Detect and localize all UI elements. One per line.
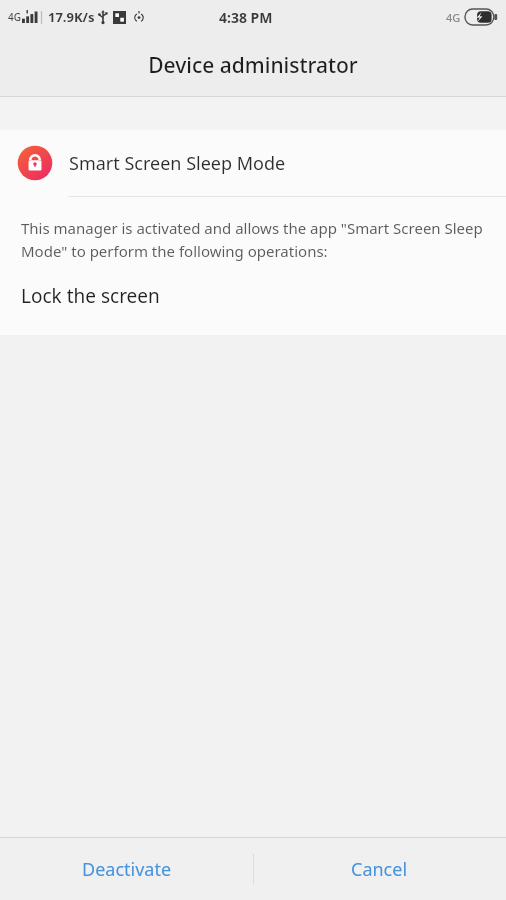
staticText: 4G [446,10,461,25]
other: Smart Screen Sleep Mode app icon [16,144,54,182]
button[interactable]: Deactivate [0,838,253,900]
staticText: 4:38 PM [219,8,273,27]
button[interactable]: Smart Screen Sleep Mode app icon [0,130,506,196]
staticText: Device administrator [148,51,358,80]
staticText: Smart Screen Sleep Mode [69,151,286,176]
staticText: This manager is activated and allows the… [21,218,484,261]
staticText: 4G [8,10,21,24]
staticText: Lock the screen [21,283,160,309]
staticText: Deactivate [82,857,172,882]
staticText: Cancel [351,857,408,882]
staticText: 17.9K/s [48,8,95,26]
button[interactable]: Cancel [253,838,506,900]
